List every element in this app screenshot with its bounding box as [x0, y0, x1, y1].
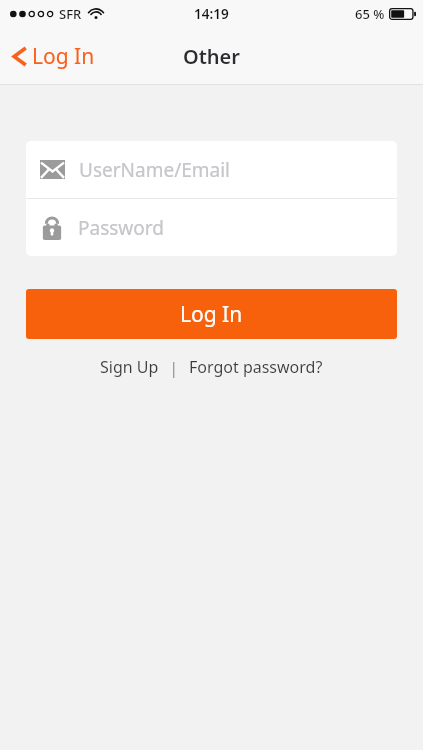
staticText: Log In — [180, 300, 243, 329]
button[interactable]: Sign Up — [95, 352, 164, 382]
staticText: Other — [183, 43, 240, 70]
staticText: SFR — [59, 5, 82, 23]
staticText: | — [169, 356, 179, 379]
staticText: Forgot password? — [189, 356, 323, 378]
staticText: Sign Up — [100, 356, 159, 378]
button[interactable]: Forgot password? — [184, 352, 328, 382]
button[interactable]: Log In — [6, 36, 101, 77]
button[interactable]: Log In — [26, 289, 397, 339]
staticText: Password — [78, 215, 164, 241]
staticText: Log In — [32, 42, 95, 71]
staticText: UserName/Email — [79, 157, 230, 183]
staticText: 14:19 — [194, 5, 229, 23]
staticText: 65 % — [355, 5, 385, 23]
button[interactable]: Password — [26, 199, 397, 256]
button[interactable]: UserName/Email — [26, 141, 397, 198]
